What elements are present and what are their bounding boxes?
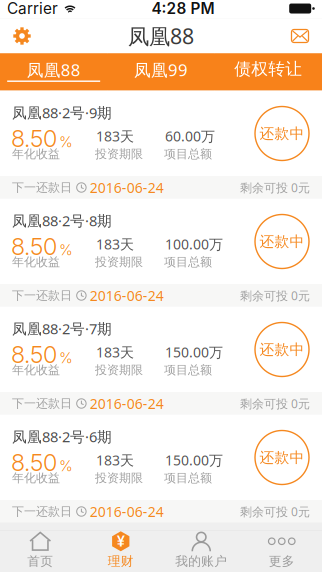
staticText: 2016-06-24 [90, 286, 164, 305]
staticText: 凤凰88·2号·8期 [12, 210, 112, 230]
staticText: % [59, 241, 73, 259]
staticText: 4:28 PM [151, 0, 214, 18]
staticText: 首页 [27, 553, 53, 569]
staticText: % [59, 349, 73, 367]
staticText: 2016-06-24 [90, 178, 164, 197]
staticText: 下一还款日 [12, 396, 72, 411]
staticText: % [59, 133, 73, 151]
staticText: 8.50 [11, 448, 57, 477]
button[interactable]: 凤凰88 [0, 53, 107, 90]
staticText: 年化收益 [12, 362, 60, 378]
staticText: 8.50 [11, 124, 57, 153]
staticText: 150.00万 [165, 342, 223, 362]
button[interactable]: 更多 [241, 531, 322, 572]
staticText: % [59, 457, 73, 475]
staticText: 投资期限 [95, 362, 143, 378]
staticText: 183天 [96, 450, 134, 470]
staticText: 2016-06-24 [90, 394, 164, 413]
staticText: 项目总额 [164, 146, 212, 162]
button[interactable]: 凤凰88·2号·7期 [0, 306, 322, 414]
staticText: 剩余可投 0元 [240, 395, 310, 412]
staticText: 还款中 [259, 448, 304, 467]
staticText: 8.50 [11, 340, 57, 369]
staticText: 凤凰99 [134, 58, 188, 81]
button[interactable]: 首页 [0, 531, 80, 572]
staticText: 凤凰88 [128, 21, 194, 51]
staticText: 年化收益 [12, 146, 60, 162]
staticText: 投资期限 [95, 146, 143, 162]
button[interactable]: ¥ [80, 531, 161, 572]
staticText: 剩余可投 0元 [240, 179, 310, 196]
staticText: 项目总额 [164, 362, 212, 378]
staticText: 投资期限 [95, 470, 143, 486]
button[interactable]: Settings [0, 18, 44, 53]
staticText: 还款中 [259, 232, 304, 251]
button[interactable]: 我的账户 [161, 531, 241, 572]
staticText: 60.00万 [165, 126, 215, 146]
staticText: 剩余可投 0元 [240, 287, 310, 304]
staticText: ¥ [117, 532, 125, 550]
staticText: 更多 [269, 553, 295, 569]
button[interactable]: 债权转让 [215, 53, 322, 90]
staticText: 下一还款日 [12, 504, 72, 519]
staticText: 项目总额 [164, 470, 212, 486]
staticText: 下一还款日 [12, 180, 72, 195]
staticText: 2016-06-24 [90, 502, 164, 521]
staticText: 150.00万 [165, 450, 223, 470]
staticText: 凤凰88·2号·6期 [12, 426, 112, 446]
staticText: 还款中 [259, 124, 304, 143]
staticText: 下一还款日 [12, 288, 72, 303]
staticText: 投资期限 [95, 254, 143, 270]
staticText: 债权转让 [234, 58, 302, 79]
staticText: 项目总额 [164, 254, 212, 270]
staticText: 100.00万 [165, 234, 223, 254]
button[interactable]: Messages [278, 18, 322, 53]
staticText: 年化收益 [12, 470, 60, 486]
staticText: 我的账户 [175, 553, 227, 569]
staticText: 凤凰88·2号·7期 [12, 318, 112, 338]
staticText: 凤凰88 [27, 58, 81, 81]
staticText: 剩余可投 0元 [240, 503, 310, 520]
staticText: 理财 [108, 553, 134, 569]
staticText: 183天 [96, 342, 134, 362]
button[interactable]: 凤凰88·2号·6期 [0, 414, 322, 522]
button[interactable]: 凤凰99 [107, 53, 215, 90]
staticText: 183天 [96, 234, 134, 254]
staticText: 年化收益 [12, 254, 60, 270]
staticText: 183天 [96, 126, 134, 146]
button[interactable]: 凤凰88·2号·9期 [0, 90, 322, 198]
staticText: Carrier [7, 0, 58, 18]
staticText: 8.50 [11, 232, 57, 261]
button[interactable]: 凤凰88·2号·8期 [0, 198, 322, 306]
staticText: 凤凰88·2号·9期 [12, 102, 112, 122]
staticText: 还款中 [259, 340, 304, 359]
